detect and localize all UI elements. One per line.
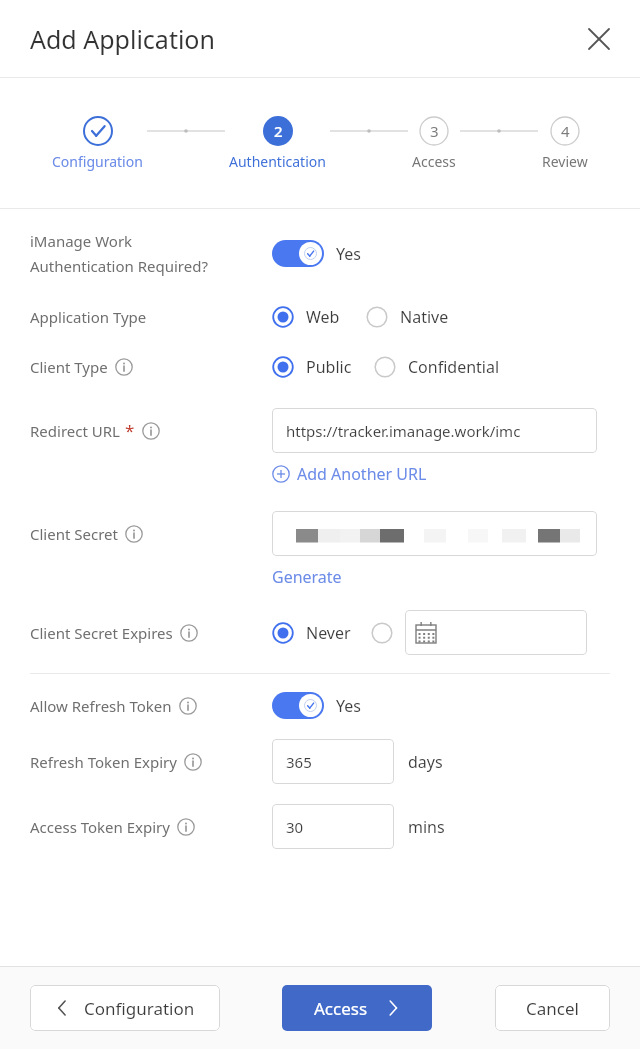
staticText: Authentication [229, 152, 326, 171]
button[interactable]: Native [366, 306, 449, 328]
staticText: Yes [336, 695, 361, 717]
button[interactable]: Generate [272, 566, 342, 588]
staticText: Access Token Expiry [30, 817, 170, 837]
staticText: Configuration [52, 152, 143, 171]
button[interactable]: Cancel [495, 985, 610, 1031]
staticText: Client Secret Expires [30, 623, 173, 643]
button[interactable]: Toggle Yes [272, 240, 324, 267]
staticText: Never [306, 622, 351, 644]
button[interactable]: Expires on date [371, 622, 393, 644]
staticText: 365 [286, 752, 312, 772]
staticText: 4 [561, 121, 570, 141]
staticText: Public [306, 356, 352, 378]
button[interactable]: Access [282, 985, 432, 1031]
button[interactable]: 30 [272, 804, 394, 849]
button[interactable]: Close [576, 16, 622, 62]
staticText: Allow Refresh Token [30, 696, 172, 716]
staticText: Cancel [526, 997, 579, 1020]
button[interactable]: 365 [272, 739, 394, 784]
staticText: Redirect URL [30, 421, 120, 441]
staticText: Add Application [30, 22, 215, 56]
staticText: Access [314, 997, 368, 1020]
button[interactable]: https://tracker.imanage.work/imc [272, 408, 597, 453]
staticText: 3 [430, 121, 439, 141]
staticText: 2 [274, 121, 283, 141]
button[interactable]: Public [272, 356, 352, 378]
button[interactable]: Confidential [374, 356, 500, 378]
staticText: https://tracker.imanage.work/imc [286, 421, 521, 441]
button[interactable]: 4 [542, 116, 588, 171]
staticText: Authentication Required? [30, 256, 208, 276]
staticText: Client Secret [30, 524, 118, 544]
button[interactable] [272, 511, 597, 556]
button[interactable]: Toggle Yes [272, 692, 324, 719]
staticText: Review [542, 152, 588, 171]
button[interactable]: Never [272, 622, 351, 644]
staticText: Generate [272, 566, 342, 588]
staticText: iManage Work [30, 231, 133, 251]
staticText: Client Type [30, 357, 108, 377]
staticText: Confidential [408, 356, 500, 378]
button[interactable]: 2 [229, 116, 326, 171]
staticText: Web [306, 306, 340, 328]
staticText: * [125, 419, 135, 442]
staticText: Native [400, 306, 449, 328]
staticText: Add Another URL [297, 463, 427, 485]
staticText: mins [408, 816, 445, 838]
button[interactable]: Configuration [52, 116, 143, 171]
staticText: Yes [336, 243, 361, 265]
staticText: Access [412, 152, 456, 171]
button[interactable]: Configuration [30, 985, 220, 1031]
staticText: Application Type [30, 307, 147, 327]
button[interactable]: Web [272, 306, 340, 328]
staticText: Refresh Token Expiry [30, 752, 177, 772]
staticText: 30 [286, 817, 304, 837]
staticText: Configuration [84, 997, 195, 1020]
button[interactable]: 3 [412, 116, 456, 171]
button[interactable]: Add Another URL [272, 463, 427, 485]
button[interactable] [405, 610, 587, 655]
staticText: days [408, 751, 443, 773]
